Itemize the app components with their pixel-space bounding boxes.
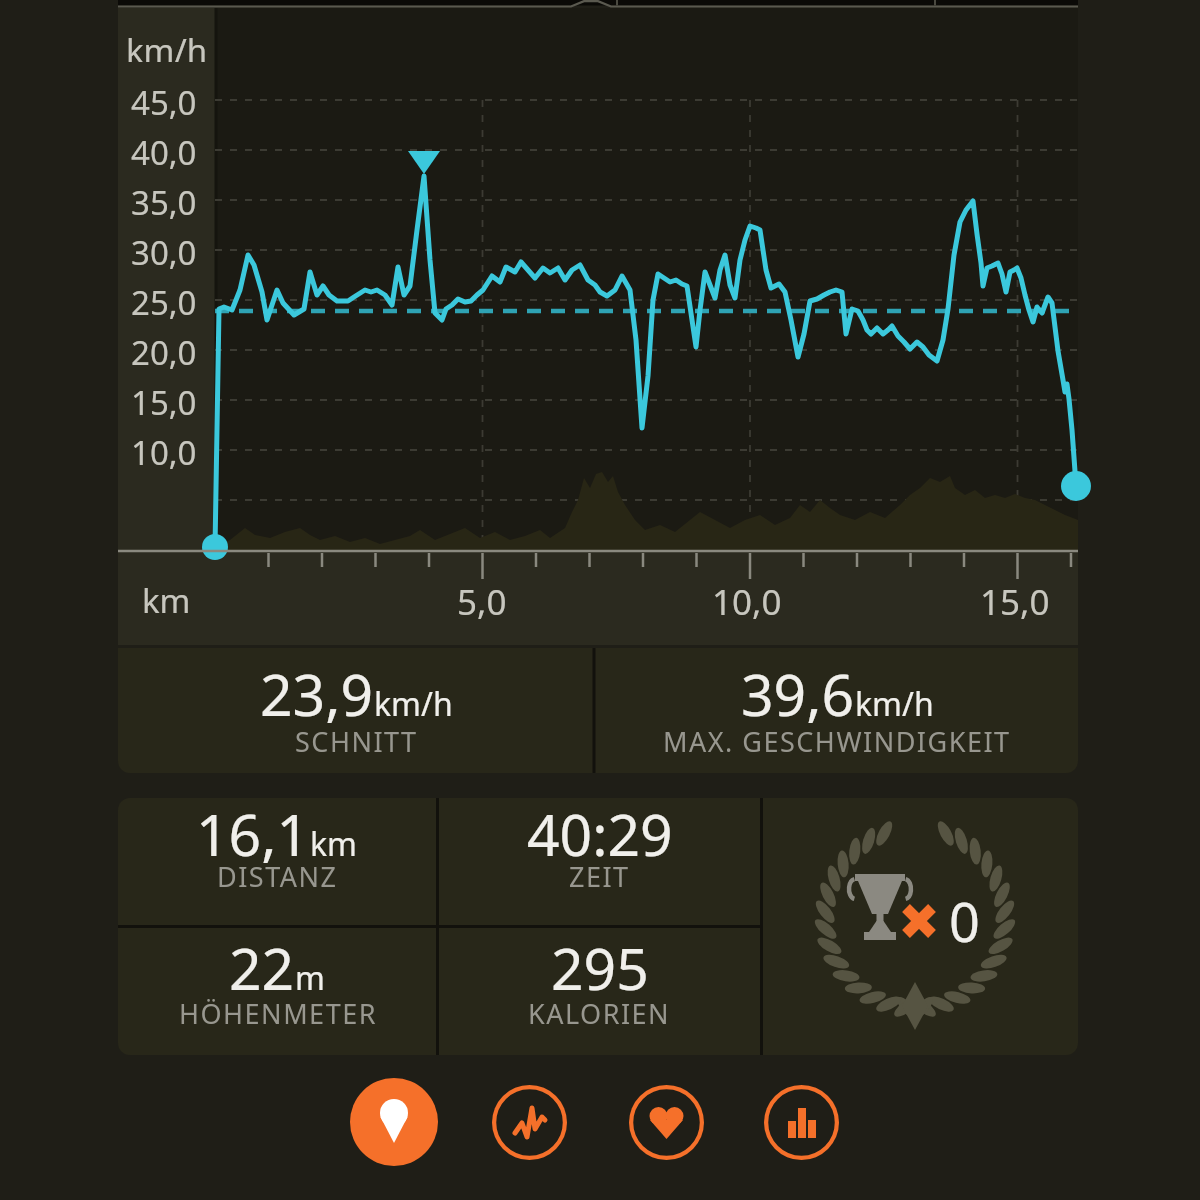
- staticText: DISTANZ: [217, 858, 338, 895]
- staticText: 40,0: [131, 130, 197, 170]
- button[interactable]: [350, 1078, 438, 1166]
- staticText: 5,0: [457, 578, 507, 622]
- staticText: ZEIT: [569, 858, 630, 895]
- staticText: m: [295, 956, 325, 1000]
- staticText: km: [142, 578, 191, 622]
- staticText: 0: [949, 884, 980, 944]
- staticText: 30,0: [131, 230, 197, 270]
- staticText: km/h: [855, 682, 934, 726]
- staticText: 295: [551, 929, 649, 1007]
- staticText: 16,1: [196, 795, 310, 873]
- staticText: 25,0: [131, 280, 197, 320]
- button[interactable]: [629, 1085, 704, 1160]
- staticText: 15,0: [980, 578, 1050, 622]
- staticText: HÖHENMETER: [179, 995, 377, 1032]
- staticText: KALORIEN: [528, 995, 671, 1032]
- staticText: km/h: [126, 28, 208, 62]
- staticText: 40:29: [527, 795, 673, 873]
- staticText: 39,6: [741, 655, 855, 733]
- staticText: 35,0: [131, 180, 197, 220]
- button[interactable]: [492, 1085, 567, 1160]
- button[interactable]: [764, 1085, 839, 1160]
- staticText: SCHNITT: [295, 723, 418, 760]
- staticText: 10,0: [131, 430, 197, 470]
- staticText: 45,0: [131, 80, 197, 120]
- staticText: 20,0: [131, 330, 197, 370]
- staticText: km: [310, 822, 358, 866]
- staticText: 10,0: [712, 578, 782, 622]
- staticText: 15,0: [131, 380, 197, 420]
- staticText: 23,9: [260, 655, 374, 733]
- staticText: MAX. GESCHWINDIGKEIT: [663, 723, 1011, 760]
- staticText: km/h: [374, 682, 453, 726]
- staticText: 22: [229, 929, 295, 1007]
